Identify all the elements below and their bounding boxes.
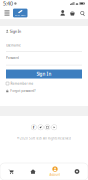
button[interactable]: Settings — [66, 163, 88, 180]
button[interactable]: Facebook — [31, 125, 36, 130]
staticText: SOFT TECH — [15, 14, 26, 17]
button[interactable]: Shop — [0, 163, 22, 180]
button[interactable]: Account — [44, 163, 66, 180]
button[interactable]: Account — [60, 10, 65, 16]
staticText: Account — [49, 173, 60, 177]
staticText: Sign In — [36, 71, 51, 77]
button[interactable]: Twitter — [38, 125, 43, 130]
button[interactable]: Menu — [3, 8, 11, 18]
button[interactable]: Sign In — [6, 69, 82, 78]
staticText: f — [33, 125, 35, 130]
button[interactable]: YouTube — [51, 125, 57, 130]
staticText: Remember me — [11, 81, 34, 86]
staticText: Password — [6, 56, 19, 60]
button[interactable]: Home — [13, 9, 27, 17]
staticText: Sign In — [10, 29, 21, 34]
button[interactable]: Remember me — [6, 81, 34, 86]
staticText: © 2020 Soft Tech All Rights Reserved — [17, 136, 71, 140]
button[interactable]: Home — [22, 163, 44, 180]
button[interactable]: Instagram — [45, 125, 50, 130]
staticText: Forgot password? — [10, 89, 35, 93]
button[interactable]: Cart — [70, 10, 75, 16]
staticText: 5:40 — [3, 0, 13, 7]
button[interactable]: Forgot password? — [6, 89, 35, 93]
button[interactable]: Search — [80, 10, 85, 16]
staticText: Username — [6, 43, 21, 47]
